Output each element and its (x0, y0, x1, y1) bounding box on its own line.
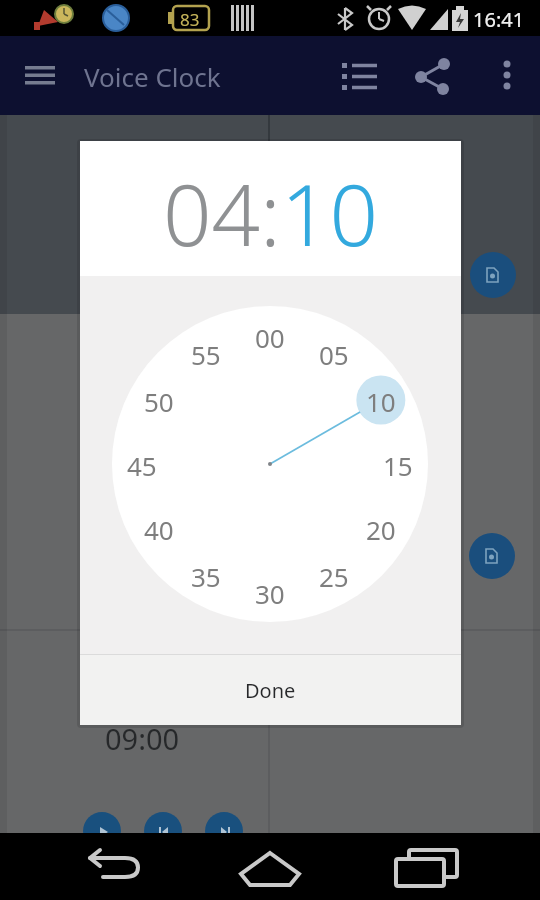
button[interactable] (332, 56, 388, 96)
button[interactable] (469, 533, 515, 579)
staticText: Voice Clock (84, 59, 221, 94)
button[interactable] (480, 56, 532, 96)
staticText: 55 (191, 337, 221, 369)
button[interactable] (405, 56, 461, 96)
staticText: 30 (255, 576, 285, 608)
staticText: 10 (366, 384, 396, 416)
button[interactable] (12, 50, 68, 94)
staticText: 09:00 (105, 719, 180, 758)
staticText: 05 (319, 337, 349, 369)
button[interactable] (230, 841, 310, 895)
button[interactable] (72, 841, 160, 895)
staticText: 20 (366, 512, 396, 544)
staticText: 16:41 (473, 6, 525, 33)
staticText: 45 (127, 448, 157, 480)
button[interactable] (385, 841, 469, 895)
button[interactable]: Done (80, 655, 461, 725)
staticText: 04: (163, 155, 281, 271)
staticText: 50 (144, 384, 174, 416)
button[interactable] (470, 252, 516, 298)
staticText: 25 (319, 559, 349, 591)
staticText: 10 (281, 155, 379, 271)
staticText: 35 (191, 559, 221, 591)
button[interactable] (144, 812, 182, 850)
staticText: 40 (144, 512, 174, 544)
staticText: 83 (180, 8, 200, 31)
staticText: 00 (255, 320, 285, 352)
staticText: 15 (383, 448, 413, 480)
staticText: Done (245, 677, 296, 704)
button[interactable] (83, 812, 121, 850)
button[interactable] (205, 812, 243, 850)
